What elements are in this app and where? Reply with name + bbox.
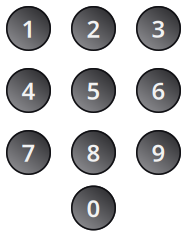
- button[interactable]: 7: [6, 130, 51, 175]
- button[interactable]: 8: [71, 130, 116, 175]
- staticText: 5: [86, 75, 100, 106]
- button[interactable]: 4: [6, 68, 51, 113]
- staticText: 8: [86, 137, 100, 168]
- button[interactable]: 0: [71, 185, 116, 230]
- staticText: 4: [21, 75, 35, 106]
- button[interactable]: 5: [71, 68, 116, 113]
- staticText: 7: [21, 137, 35, 168]
- button[interactable]: 3: [136, 6, 181, 51]
- button[interactable]: 2: [71, 6, 116, 51]
- button[interactable]: 6: [136, 68, 181, 113]
- staticText: 6: [151, 75, 165, 106]
- button[interactable]: 1: [6, 6, 51, 51]
- staticText: 1: [21, 13, 35, 44]
- staticText: 0: [86, 192, 100, 224]
- staticText: 2: [86, 13, 100, 44]
- staticText: 3: [151, 13, 165, 44]
- staticText: 9: [151, 137, 165, 168]
- button[interactable]: 9: [136, 130, 181, 175]
